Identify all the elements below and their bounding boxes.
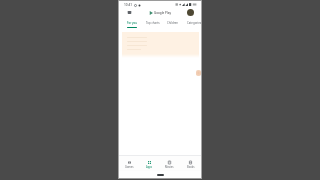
staticText: 10:41	[124, 3, 133, 7]
staticText: Top charts	[146, 21, 160, 25]
button[interactable]: Movies	[159, 156, 180, 171]
button[interactable]: For you	[123, 20, 141, 31]
staticText: Games	[125, 165, 134, 169]
button[interactable]: Apps	[139, 156, 159, 171]
button[interactable]: Categories	[185, 20, 203, 31]
button[interactable]: Games	[119, 156, 139, 171]
button[interactable]: Top charts	[144, 20, 162, 31]
button[interactable]: Account	[187, 9, 194, 16]
button[interactable]: Books	[180, 156, 201, 171]
staticText: Books	[187, 165, 195, 169]
staticText: Children	[167, 21, 179, 25]
staticText: Categories	[187, 21, 202, 25]
button[interactable]: Children	[164, 20, 182, 31]
button[interactable]: Back	[125, 9, 134, 16]
staticText: For you	[127, 21, 138, 25]
staticText: Apps	[146, 165, 153, 169]
staticText: Google Play	[154, 11, 171, 15]
staticText: Movies	[165, 165, 174, 169]
